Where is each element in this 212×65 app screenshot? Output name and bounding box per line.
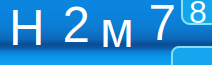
staticText: 2	[62, 0, 89, 52]
button[interactable]: Badge 8	[182, 0, 212, 24]
staticText: 8	[189, 0, 207, 30]
staticText: м	[100, 2, 134, 57]
staticText: Н	[9, 0, 45, 55]
button[interactable]: Card	[172, 47, 212, 65]
staticText: 7	[148, 0, 175, 50]
